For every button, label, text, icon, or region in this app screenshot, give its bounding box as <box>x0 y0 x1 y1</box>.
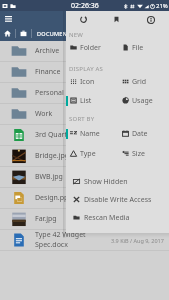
button[interactable]: Design.pptx <box>0 188 169 208</box>
button[interactable]: Finance <box>0 62 169 82</box>
button[interactable]: Folder <box>64 39 116 56</box>
staticText: 21% <box>156 2 168 10</box>
staticText: Disable Write Access <box>84 195 152 205</box>
button[interactable]: List <box>64 92 116 109</box>
button[interactable]: Refresh <box>77 13 90 26</box>
staticText: Design.pptx <box>35 193 75 203</box>
staticText: Show Hidden <box>84 177 128 187</box>
button[interactable]: Type 42 Widget <box>0 230 169 250</box>
button[interactable]: Date <box>116 125 168 142</box>
staticText: Grid <box>132 77 147 87</box>
button[interactable]: File <box>116 39 168 56</box>
button[interactable]: Grid <box>116 73 168 90</box>
button[interactable]: Icon <box>64 73 116 90</box>
button[interactable]: BWB.jpg <box>0 167 169 187</box>
staticText: NEW <box>69 31 84 39</box>
button[interactable]: Far.jpg <box>0 209 169 229</box>
button[interactable]: Name <box>64 125 116 142</box>
staticText: File <box>132 43 144 53</box>
staticText: 3rd Quarter <box>35 130 74 140</box>
staticText: Finance <box>35 67 61 77</box>
staticText: DISPLAY AS <box>69 65 104 73</box>
staticText: Usage <box>132 96 153 106</box>
staticText: Type <box>80 149 96 159</box>
button[interactable]: Bridge.jpg <box>0 146 169 166</box>
staticText: Work <box>35 109 53 119</box>
button[interactable]: Info <box>144 13 157 26</box>
button[interactable]: Storage <box>16 26 31 41</box>
button[interactable]: Show Hidden <box>66 173 169 190</box>
staticText: BWB.jpg <box>35 172 63 182</box>
staticText: SORT BY <box>69 115 95 123</box>
staticText: Size <box>132 149 145 159</box>
staticText: 02:26:36 <box>71 1 99 11</box>
staticText: Archive <box>35 46 60 56</box>
staticText: Type 42 Widget <box>35 230 86 240</box>
staticText: Date <box>132 129 148 139</box>
staticText: Folder <box>80 43 101 53</box>
button[interactable]: Disable Write Access <box>66 191 169 208</box>
button[interactable]: Size <box>116 145 168 162</box>
button[interactable]: Bookmark <box>110 13 123 26</box>
button[interactable]: 3rd Quarter <box>0 125 169 145</box>
button[interactable]: Type <box>64 145 116 162</box>
staticText: 3.9 KiB / Aug 9, 2017 <box>111 237 164 244</box>
button[interactable]: Rescan Media <box>66 209 169 226</box>
button[interactable]: Usage <box>116 92 168 109</box>
staticText: List <box>80 96 92 106</box>
staticText: Spec.docx <box>35 240 68 250</box>
button[interactable]: Work <box>0 104 169 124</box>
staticText: Rescan Media <box>84 213 130 223</box>
button[interactable]: Personal <box>0 83 169 103</box>
staticText: Icon <box>80 77 95 87</box>
staticText: Name <box>80 129 100 139</box>
button[interactable]: Home <box>0 26 15 41</box>
button[interactable]: Archive <box>0 41 169 61</box>
button[interactable]: Menu <box>1 12 16 27</box>
staticText: DOCUMENTS <box>37 30 74 37</box>
staticText: Personal <box>35 88 64 98</box>
staticText: Bridge.jpg <box>35 151 70 161</box>
staticText: Far.jpg <box>35 214 57 224</box>
